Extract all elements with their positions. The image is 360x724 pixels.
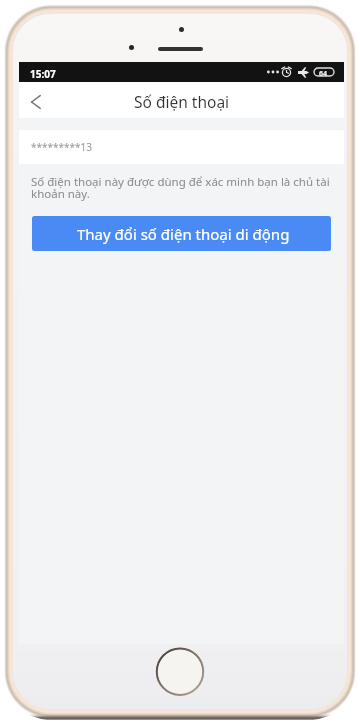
button[interactable]: Thay đổi số điện thoại di động	[32, 216, 331, 251]
staticText: 64	[319, 69, 328, 79]
staticText: Số điện thoại này được dùng để xác minh …	[31, 174, 332, 202]
staticText: *********13	[31, 140, 93, 154]
staticText: Thay đổi số điện thoại di động	[77, 224, 290, 244]
button[interactable]: Back	[19, 82, 55, 118]
staticText: 15:07	[30, 67, 56, 81]
button[interactable]: *********13	[19, 130, 344, 164]
staticText: Số điện thoại	[134, 91, 230, 112]
